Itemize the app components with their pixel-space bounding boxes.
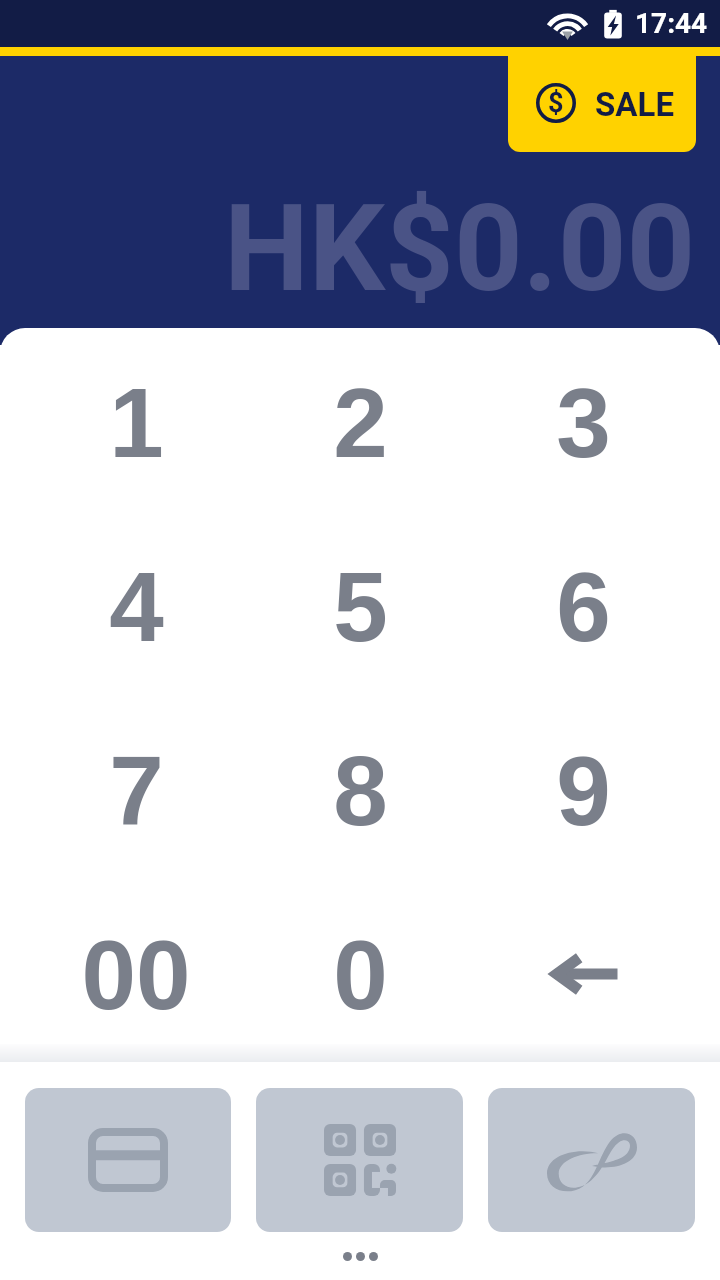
staticText: 00: [81, 920, 191, 1029]
button[interactable]: 3: [480, 330, 720, 514]
button[interactable]: 4: [0, 514, 240, 698]
staticText: 2: [333, 368, 388, 477]
button[interactable]: Sale: [508, 47, 696, 152]
staticText: HK$0.00: [224, 179, 696, 320]
staticText: 0: [333, 920, 388, 1029]
staticText: 6: [556, 552, 611, 661]
button[interactable]: 00: [0, 882, 240, 1066]
button[interactable]: Alipay payment: [488, 1088, 695, 1232]
button[interactable]: Backspace: [480, 882, 720, 1066]
staticText: 7: [109, 736, 164, 845]
button[interactable]: 8: [240, 698, 480, 882]
button[interactable]: 6: [480, 514, 720, 698]
staticText: 17:44: [635, 7, 708, 40]
staticText: 5: [333, 552, 388, 661]
button[interactable]: 1: [0, 330, 240, 514]
button[interactable]: Card payment: [25, 1088, 231, 1232]
button[interactable]: 7: [0, 698, 240, 882]
staticText: 1: [109, 368, 164, 477]
button[interactable]: 2: [240, 330, 480, 514]
staticText: 3: [556, 368, 611, 477]
button[interactable]: 9: [480, 698, 720, 882]
staticText: $: [548, 87, 564, 119]
button[interactable]: QR code payment: [256, 1088, 463, 1232]
staticText: 9: [556, 736, 611, 845]
other: Backspace: [550, 951, 623, 997]
button[interactable]: 0: [240, 882, 480, 1066]
button[interactable]: More payment methods: [0, 1232, 720, 1280]
staticText: SALE: [595, 85, 674, 124]
staticText: 4: [109, 552, 164, 661]
other: Sale: [535, 82, 577, 124]
staticText: 8: [333, 736, 388, 845]
button[interactable]: 5: [240, 514, 480, 698]
